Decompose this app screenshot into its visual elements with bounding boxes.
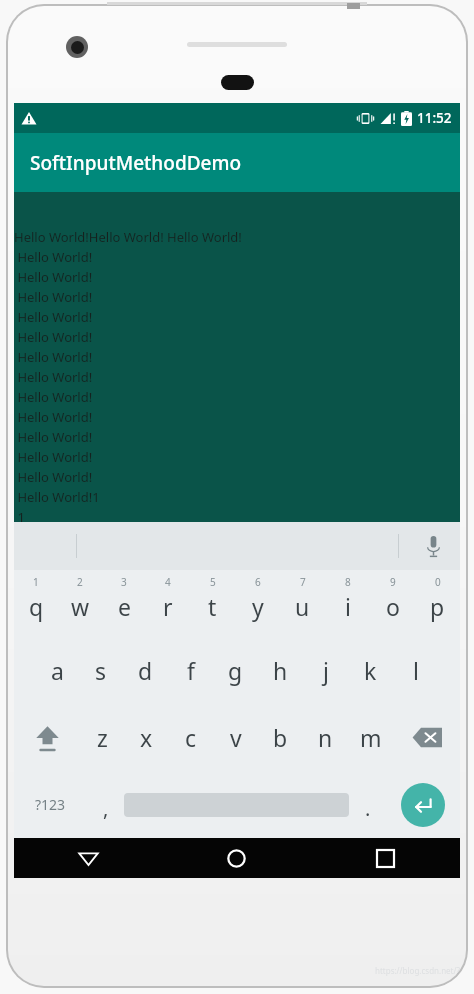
staticText: a <box>51 655 64 686</box>
button[interactable]: SoftInputMethodDemo <box>14 133 460 192</box>
staticText: e <box>118 591 131 622</box>
button[interactable]: Enter <box>401 783 445 827</box>
staticText: o <box>386 591 400 622</box>
button[interactable]: l <box>393 637 438 704</box>
staticText: h <box>273 655 288 686</box>
button[interactable]: f <box>168 637 213 704</box>
button[interactable]: Backspace <box>393 704 460 771</box>
button[interactable]: 5 <box>190 570 235 637</box>
staticText: Hello World! <box>14 248 93 266</box>
button[interactable]: 6 <box>235 570 280 637</box>
staticText: f <box>187 655 195 686</box>
staticText: Hello World!1 <box>14 488 100 506</box>
staticText: Hello World! <box>14 268 93 286</box>
button[interactable]: 4 <box>146 570 190 637</box>
button[interactable]: m <box>348 704 393 771</box>
button[interactable]: 8 <box>325 570 370 637</box>
button[interactable]: s <box>79 637 123 704</box>
staticText: Hello World! <box>14 428 93 446</box>
staticText: https://blog.csdn.net/? <box>375 965 460 976</box>
button[interactable]: Voice input <box>416 529 450 563</box>
staticText: Hello World! <box>14 288 93 306</box>
staticText: Hello World! <box>14 348 93 366</box>
button[interactable]: a <box>35 637 79 704</box>
button[interactable]: g <box>213 637 258 704</box>
staticText: Hello World!Hello World! Hello World! <box>14 228 242 246</box>
staticText: Hello World! <box>14 408 93 426</box>
staticText: 8 <box>345 575 351 589</box>
staticText: m <box>360 722 382 753</box>
staticText: p <box>430 591 445 622</box>
button[interactable]: d <box>123 637 168 704</box>
button[interactable]: x <box>124 704 168 771</box>
staticText: 1 <box>14 508 25 522</box>
button[interactable]: h <box>258 637 303 704</box>
staticText: . <box>365 795 371 822</box>
button[interactable]: 0 <box>415 570 460 637</box>
staticText: k <box>364 655 377 686</box>
staticText: x <box>140 722 153 753</box>
staticText: 5 <box>210 575 216 589</box>
staticText: , <box>103 795 109 822</box>
button[interactable]: 1 <box>14 570 58 637</box>
staticText: y <box>252 591 264 622</box>
button[interactable]: j <box>303 637 348 704</box>
staticText: q <box>29 591 44 622</box>
staticText: g <box>228 655 243 686</box>
button[interactable]: ?123 <box>14 771 87 838</box>
button[interactable]: Shift <box>14 704 80 771</box>
staticText: r <box>163 591 173 622</box>
button[interactable]: 7 <box>280 570 325 637</box>
staticText: Hello World! <box>14 448 93 466</box>
button[interactable]: 9 <box>370 570 415 637</box>
staticText: Hello World! <box>14 388 93 406</box>
staticText: 9 <box>390 575 396 589</box>
staticText: 2 <box>77 575 83 589</box>
staticText: Hello World! <box>14 368 93 386</box>
staticText: Hello World! <box>14 308 93 326</box>
staticText: n <box>318 722 333 753</box>
staticText: 1 <box>33 575 39 589</box>
staticText: l <box>413 655 419 686</box>
button[interactable]: n <box>303 704 348 771</box>
staticText: z <box>97 722 108 753</box>
button[interactable]: 2 <box>58 570 102 637</box>
staticText: Hello World! <box>14 328 93 346</box>
staticText: v <box>230 722 242 753</box>
button[interactable]: v <box>213 704 258 771</box>
staticText: 11:52 <box>417 109 452 127</box>
button[interactable]: , <box>87 771 124 838</box>
button[interactable]: z <box>80 704 124 771</box>
button[interactable]: Back <box>14 838 162 878</box>
staticText: Hello World! <box>14 468 93 486</box>
staticText: i <box>345 591 351 622</box>
button[interactable]: k <box>348 637 393 704</box>
staticText: 6 <box>255 575 261 589</box>
staticText: 3 <box>121 575 127 589</box>
staticText: ?123 <box>35 795 66 814</box>
staticText: c <box>185 722 197 753</box>
staticText: u <box>295 591 310 622</box>
button[interactable]: 3 <box>102 570 146 637</box>
staticText: s <box>95 655 107 686</box>
button[interactable]: c <box>168 704 213 771</box>
button[interactable]: Home <box>162 838 311 878</box>
staticText: 7 <box>300 575 306 589</box>
staticText: t <box>208 591 217 622</box>
staticText: j <box>323 655 329 686</box>
button[interactable]: b <box>258 704 303 771</box>
button[interactable]: . <box>349 771 386 838</box>
staticText: d <box>138 655 153 686</box>
staticText: 0 <box>435 575 441 589</box>
staticText: w <box>71 591 90 622</box>
button[interactable]: Recent apps <box>311 838 460 878</box>
staticText: b <box>273 722 288 753</box>
staticText: SoftInputMethodDemo <box>30 150 242 176</box>
staticText: 4 <box>165 575 171 589</box>
